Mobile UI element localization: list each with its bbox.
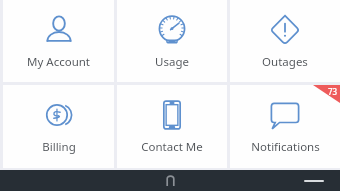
staticText: Notifications — [251, 139, 320, 155]
staticText: Usage — [155, 54, 189, 70]
staticText: Outages — [262, 54, 308, 70]
button[interactable]: My Account — [3, 0, 114, 82]
button[interactable]: Billing — [3, 85, 114, 168]
button[interactable]: Recent apps — [300, 170, 328, 191]
staticText: My Account — [27, 54, 90, 70]
staticText: Contact Me — [141, 139, 203, 155]
button[interactable]: Usage — [117, 0, 227, 82]
staticText: 73 — [328, 86, 338, 97]
button[interactable]: Notifications — [230, 85, 340, 168]
button[interactable]: Home — [157, 170, 183, 191]
button[interactable]: Outages — [230, 0, 340, 82]
button[interactable]: Contact Me — [117, 85, 227, 168]
staticText: Billing — [42, 139, 76, 155]
